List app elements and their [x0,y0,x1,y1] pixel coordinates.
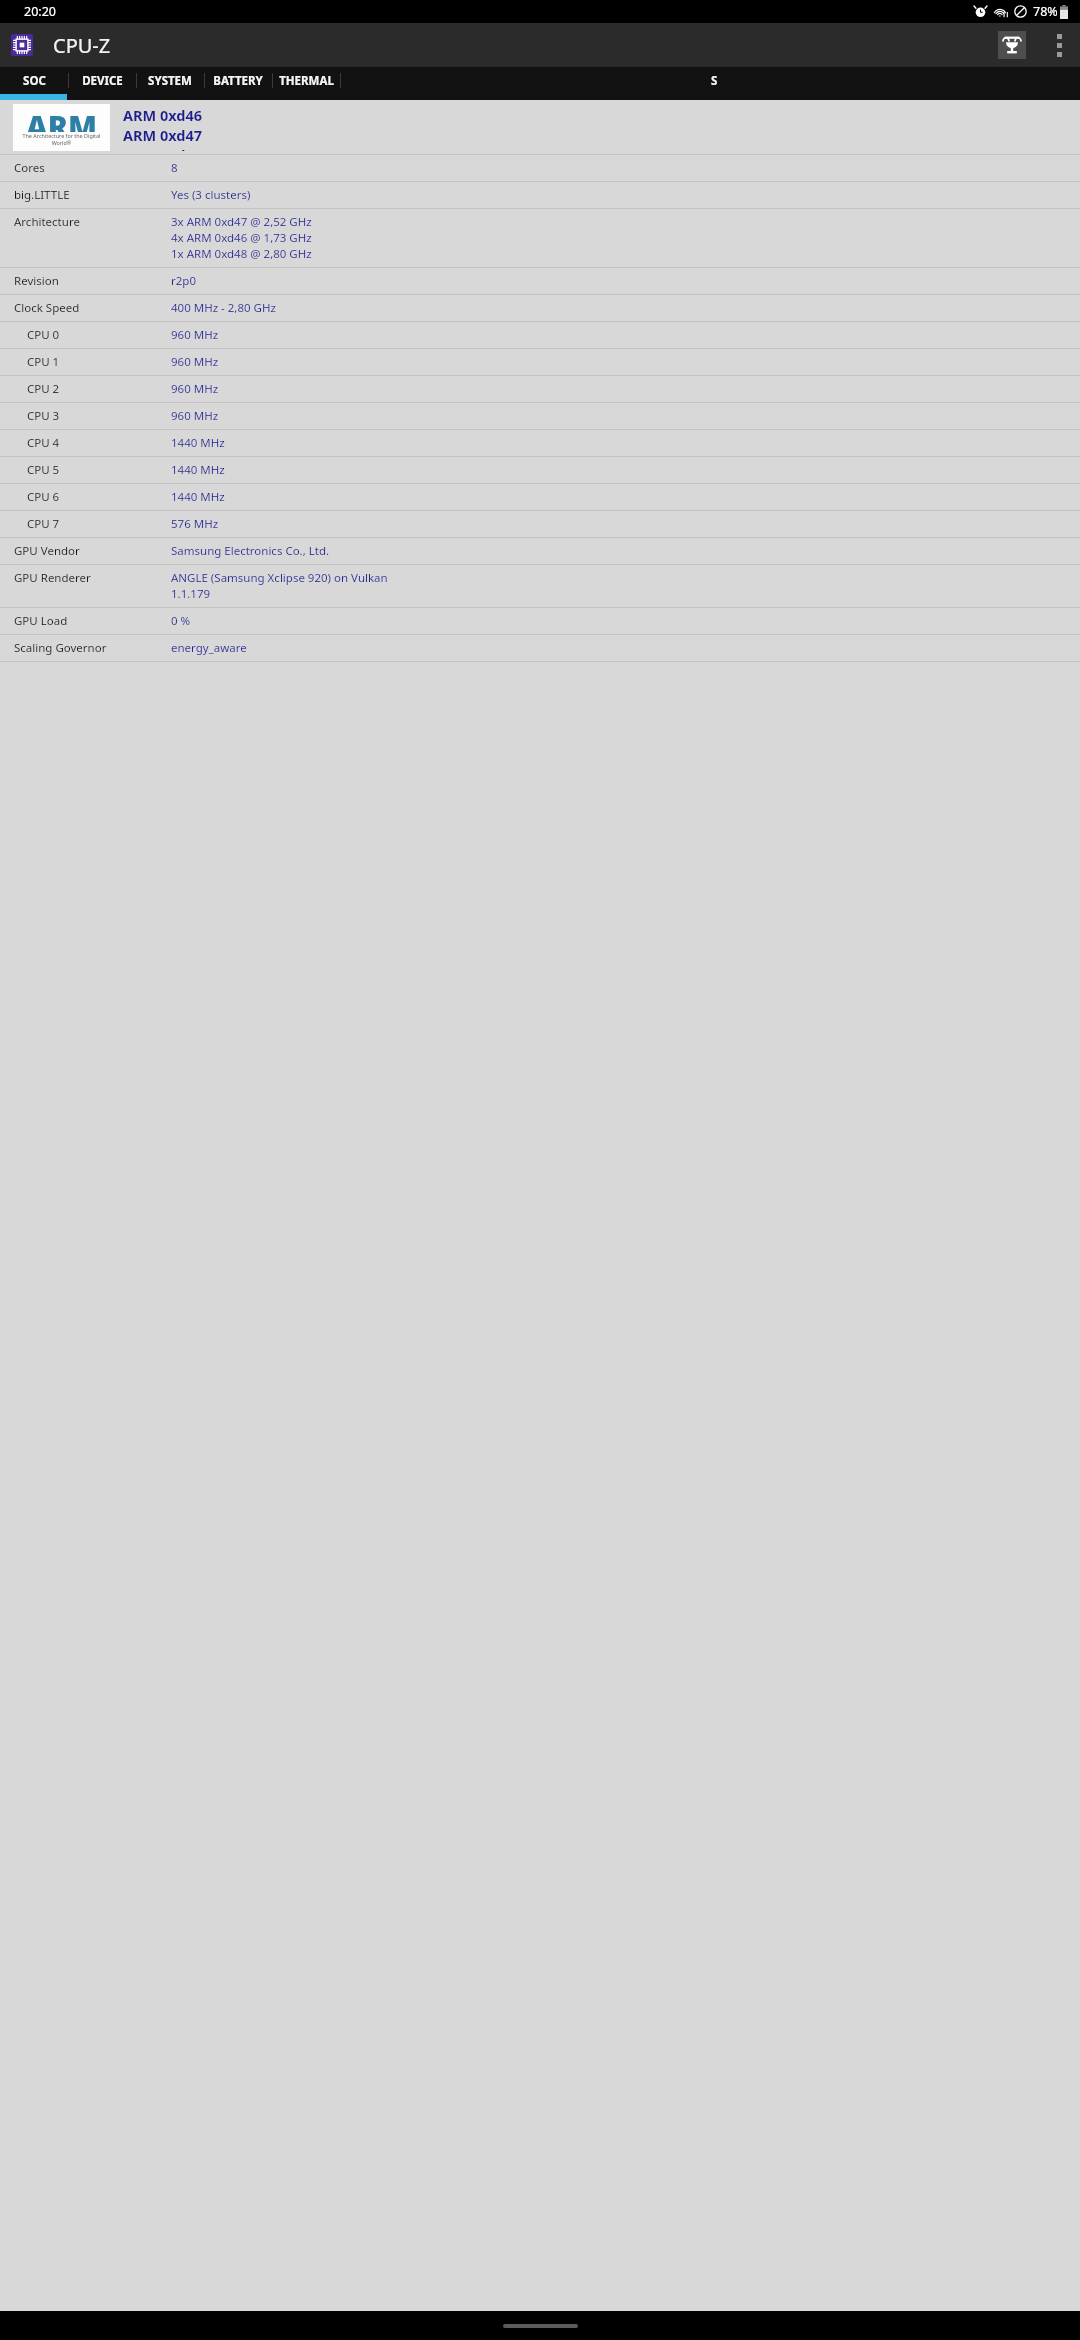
staticText: 8 [171,160,178,176]
staticText: Architecture [14,214,171,230]
staticText: Samsung Electronics Co., Ltd. [171,543,330,559]
staticText: 1.1.179 [171,586,211,602]
staticText: DEVICE [82,73,123,89]
staticText: CPU 7 [27,516,171,532]
staticText: Clock Speed [14,300,171,316]
staticText: big.LITTLE [14,187,171,203]
staticText: CPU 4 [27,435,171,451]
button[interactable]: CPU 4 [0,430,1080,457]
staticText: 1440 MHz [171,462,225,478]
staticText: 960 MHz [171,408,219,424]
staticText: Revision [14,273,171,289]
staticText: 576 MHz [171,516,219,532]
staticText: 0 % [171,613,191,629]
staticText: ARM 0xd46 [123,105,203,125]
staticText: S [711,73,718,89]
staticText: ARM [26,106,98,132]
button[interactable]: Clock Speed [0,295,1080,322]
button[interactable]: Cores [0,155,1080,182]
staticText: GPU Vendor [14,543,171,559]
button[interactable]: CPU 2 [0,376,1080,403]
button[interactable]: App icon [11,34,33,56]
button[interactable]: BATTERY [204,67,272,94]
button[interactable]: S [340,67,1080,94]
button[interactable]: CPU 1 [0,349,1080,376]
button[interactable]: DEVICE [68,67,136,94]
staticText: 1x ARM 0xd48 @ 2,80 GHz [171,246,312,262]
staticText: 960 MHz [171,381,219,397]
button[interactable]: Architecture [0,209,1080,268]
staticText: GPU Renderer [14,570,171,586]
staticText: CPU 2 [27,381,171,397]
button[interactable]: Revision [0,268,1080,295]
button[interactable]: THERMAL [272,67,340,94]
staticText: Cores [14,160,171,176]
staticText: 960 MHz [171,327,219,343]
staticText: ARM 0xd48 [123,145,203,151]
staticText: 78% [1033,3,1058,20]
staticText: Scaling Governor [14,640,171,656]
button[interactable]: GPU Load [0,608,1080,635]
staticText: CPU-Z [53,32,111,59]
button[interactable]: CPU 0 [0,322,1080,349]
staticText: 960 MHz [171,354,219,370]
button[interactable]: CPU 7 [0,511,1080,538]
staticText: ARM 0xd47 [123,125,203,145]
staticText: r2p0 [171,273,196,289]
button[interactable]: GPU Renderer [0,565,1080,608]
button[interactable]: CPU 5 [0,457,1080,484]
button[interactable]: More options [1046,23,1072,67]
staticText: THERMAL [279,73,334,89]
button[interactable]: big.LITTLE [0,182,1080,209]
staticText: 4x ARM 0xd46 @ 1,73 GHz [171,230,312,246]
button[interactable]: Benchmark ranking [998,31,1026,59]
staticText: 1440 MHz [171,435,225,451]
button[interactable]: CPU 6 [0,484,1080,511]
button[interactable]: SYSTEM [136,67,204,94]
staticText: GPU Load [14,613,171,629]
staticText: CPU 1 [27,354,171,370]
staticText: Yes (3 clusters) [171,187,251,203]
staticText: CPU 3 [27,408,171,424]
staticText: SOC [23,73,46,89]
button[interactable]: CPU 3 [0,403,1080,430]
staticText: CPU 6 [27,489,171,505]
staticText: 3x ARM 0xd47 @ 2,52 GHz [171,214,312,230]
staticText: energy_aware [171,640,247,656]
staticText: CPU 0 [27,327,171,343]
staticText: 20:20 [24,3,56,20]
button[interactable]: SOC [0,67,68,94]
button[interactable]: GPU Vendor [0,538,1080,565]
staticText: CPU 5 [27,462,171,478]
staticText: 400 MHz - 2,80 GHz [171,300,276,316]
staticText: ANGLE (Samsung Xclipse 920) on Vulkan [171,570,388,586]
staticText: SYSTEM [148,73,192,89]
staticText: The Architecture for the Digital World® [17,132,106,146]
staticText: 1440 MHz [171,489,225,505]
staticText: BATTERY [213,73,263,89]
button[interactable]: Scaling Governor [0,635,1080,662]
